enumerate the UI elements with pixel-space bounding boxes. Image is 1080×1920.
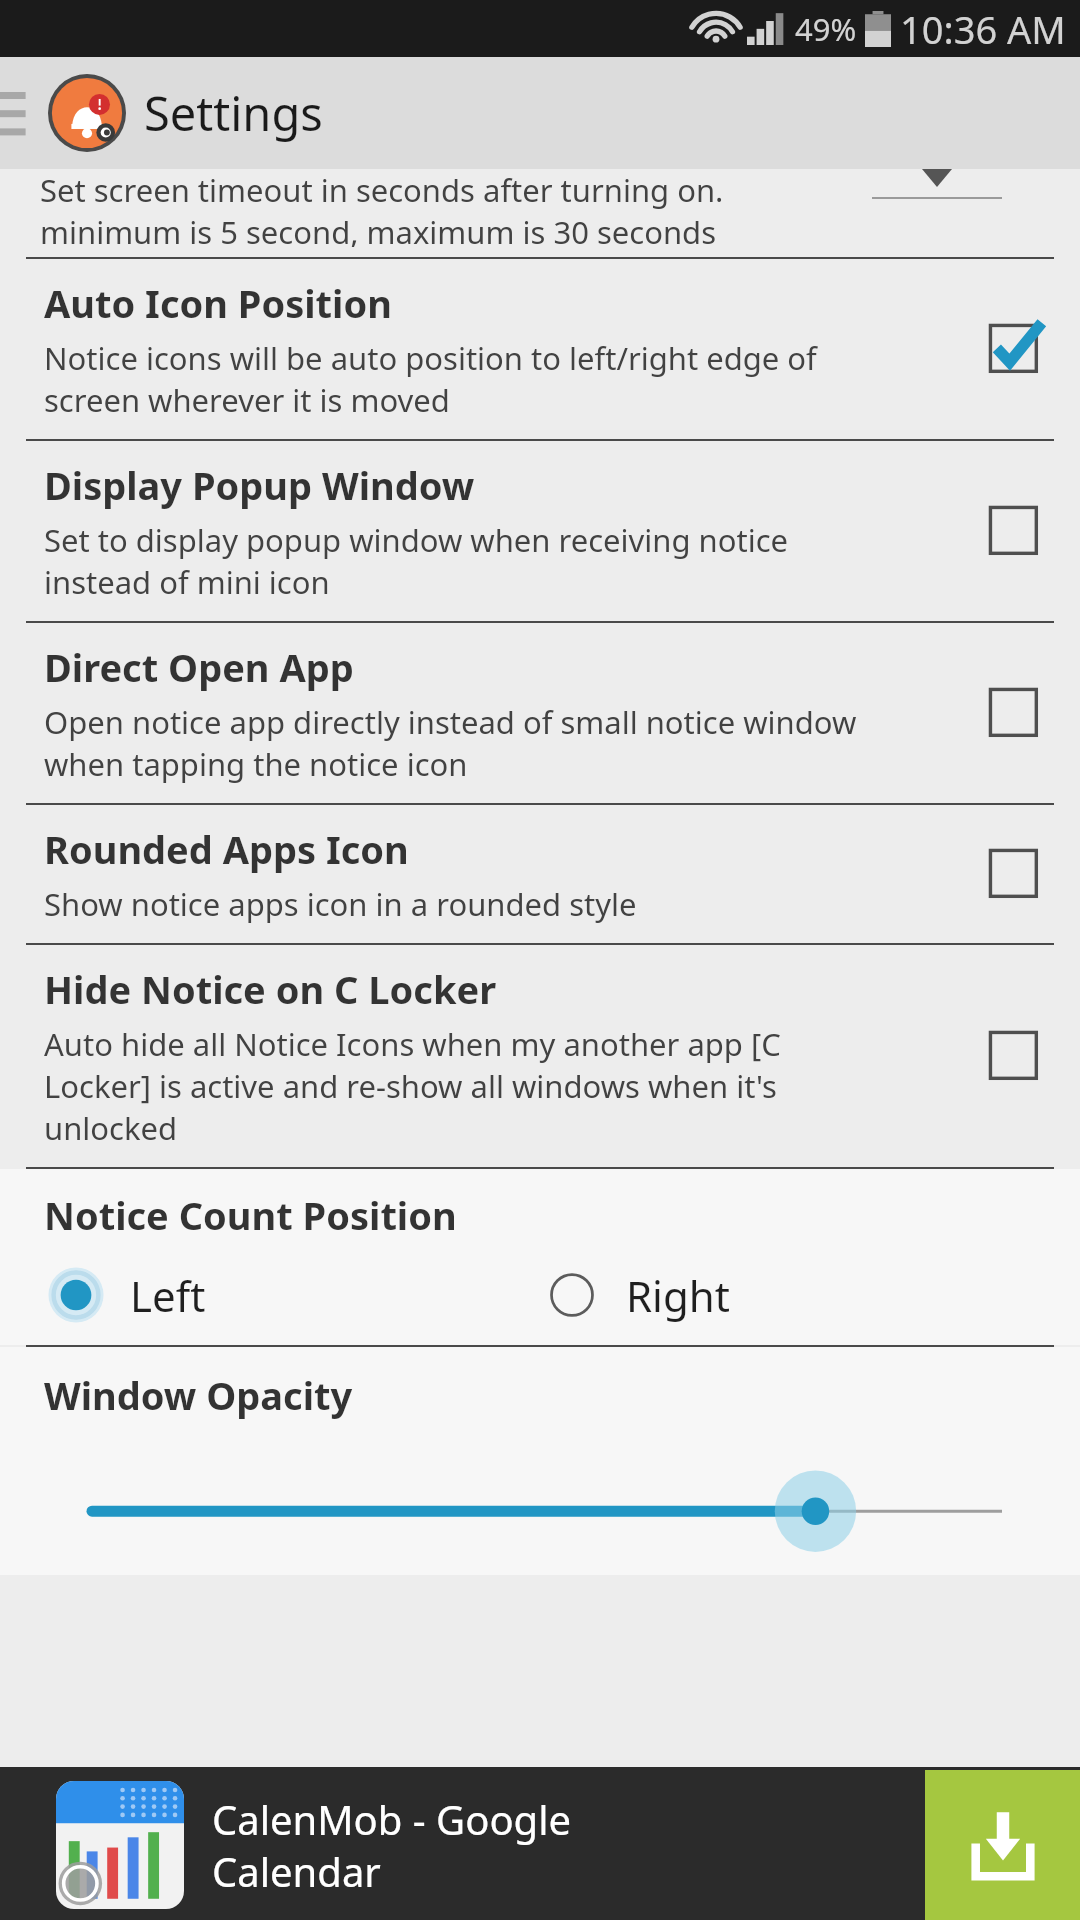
staticText: 10:36 AM (900, 3, 1066, 55)
button[interactable]: Left (0, 1263, 540, 1327)
staticText: Set screen timeout in seconds after turn… (40, 169, 724, 211)
button[interactable]: Hide Notice on C Locker (972, 1014, 1056, 1098)
staticText: Auto hide all Notice Icons when my anoth… (44, 1023, 781, 1149)
staticText: Window Opacity (44, 1369, 353, 1421)
staticText: CalenMob - Google Calendar (212, 1792, 925, 1899)
staticText: Set to display popup window when receivi… (44, 519, 789, 603)
staticText: 49% (795, 8, 857, 50)
button[interactable]: Direct Open App (972, 671, 1056, 755)
staticText: minimum is 5 second, maximum is 30 secon… (40, 211, 717, 247)
button[interactable]: Window opacity slider (0, 1465, 1080, 1575)
button[interactable]: Auto Icon Position (972, 307, 1056, 391)
button[interactable]: Display Popup Window (0, 441, 1080, 621)
staticText: Settings (144, 81, 323, 145)
button[interactable]: Rounded Apps Icon (0, 805, 1080, 943)
staticText: Hide Notice on C Locker (44, 963, 497, 1015)
staticText: Direct Open App (44, 641, 354, 693)
button[interactable]: Display Popup Window (972, 489, 1056, 573)
button[interactable]: Auto Icon Position (0, 259, 1080, 439)
staticText: Notice icons will be auto position to le… (44, 337, 817, 421)
staticText: Show notice apps icon in a rounded style (44, 883, 637, 925)
staticText: Open notice app directly instead of smal… (44, 701, 857, 785)
button[interactable]: Open navigation menu (0, 78, 32, 148)
staticText: Left (130, 1267, 206, 1324)
staticText: Rounded Apps Icon (44, 823, 409, 875)
staticText: Display Popup Window (44, 459, 475, 511)
button[interactable]: Direct Open App (0, 623, 1080, 803)
button[interactable]: Rounded Apps Icon (972, 832, 1056, 916)
staticText: Notice Count Position (44, 1189, 457, 1241)
button[interactable]: Hide Notice on C Locker (0, 945, 1080, 1167)
button[interactable]: Install (925, 1770, 1080, 1920)
button[interactable]: CalenMob - Google Calendar (0, 1770, 1080, 1920)
staticText: Right (626, 1267, 730, 1324)
button[interactable]: Right (540, 1263, 1080, 1327)
staticText: Auto Icon Position (44, 277, 392, 329)
